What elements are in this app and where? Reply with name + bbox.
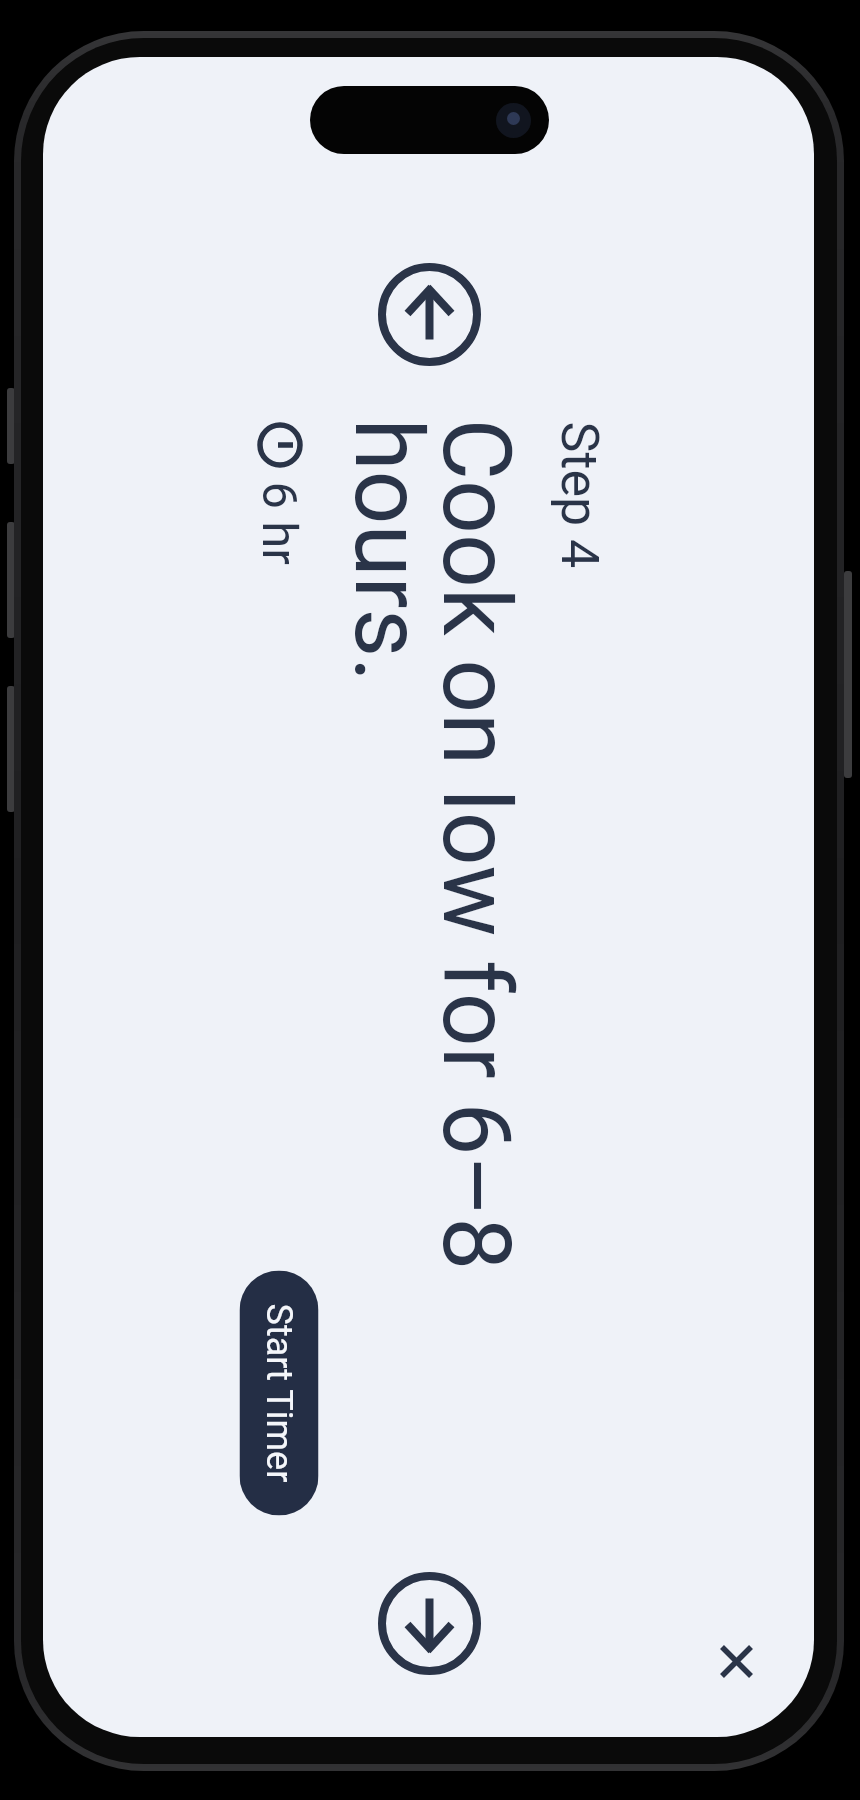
button[interactable]: Start Timer xyxy=(239,1270,318,1515)
staticText: 6 hr xyxy=(250,481,307,565)
staticText: Step 4 xyxy=(548,421,609,568)
button[interactable] xyxy=(371,1565,487,1681)
button[interactable] xyxy=(706,1631,766,1691)
staticText: Cook on low for 6–8 hours. xyxy=(331,418,531,1270)
staticText: Start Timer xyxy=(257,1303,299,1482)
button[interactable] xyxy=(371,256,487,372)
